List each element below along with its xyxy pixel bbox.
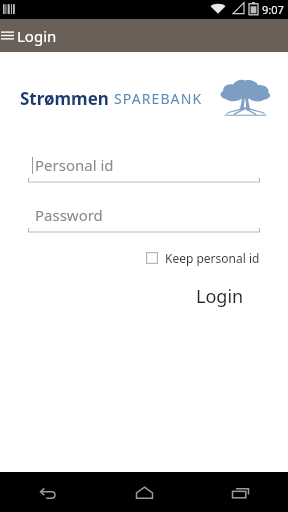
- button[interactable]: Personal id: [28, 150, 260, 184]
- button[interactable]: Login: [190, 278, 250, 315]
- staticText: Strømmen: [20, 87, 109, 110]
- button[interactable]: Home: [96, 472, 192, 512]
- staticText: Password: [35, 205, 103, 225]
- staticText: Login: [17, 26, 57, 46]
- button[interactable]: Recent apps: [192, 472, 288, 512]
- button[interactable]: Back: [0, 472, 96, 512]
- staticText: Keep personal id: [165, 250, 260, 266]
- staticText: 9:07: [262, 2, 284, 17]
- button[interactable]: Keep personal id: [144, 246, 262, 270]
- staticText: Personal id: [35, 155, 114, 175]
- button[interactable]: Open navigation drawer: [0, 19, 18, 52]
- staticText: Login: [196, 284, 244, 309]
- staticText: SPAREBANK: [114, 89, 203, 108]
- button[interactable]: Password: [28, 200, 260, 234]
